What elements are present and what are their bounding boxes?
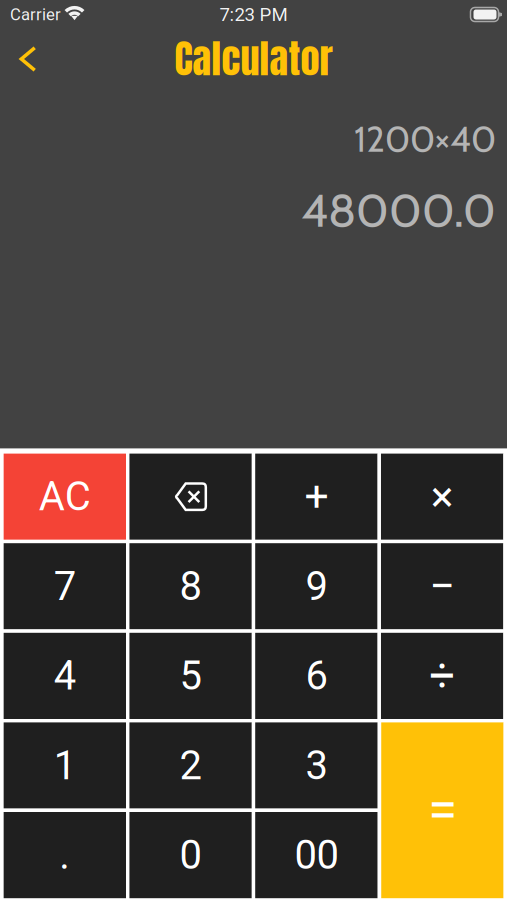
staticText: Calculator <box>174 30 332 88</box>
staticText: Carrier <box>10 5 61 24</box>
staticText: 0 <box>180 832 202 879</box>
button[interactable]: Equals <box>381 722 504 898</box>
staticText: 5 <box>180 652 202 699</box>
staticText: 7 <box>54 563 76 610</box>
staticText: 48000.0 <box>301 182 496 238</box>
button[interactable]: 8 <box>129 543 252 629</box>
staticText: ÷ <box>429 649 455 702</box>
staticText: = <box>428 779 457 842</box>
staticText: 1 <box>54 742 76 789</box>
button[interactable]: Multiply <box>381 454 503 540</box>
staticText: 8 <box>180 563 202 610</box>
staticText: 4 <box>54 652 76 699</box>
button[interactable]: 3 <box>255 722 378 809</box>
staticText: × <box>431 472 454 522</box>
staticText: AC <box>39 473 91 520</box>
button[interactable]: Minus <box>381 543 503 629</box>
button[interactable]: 1 <box>4 722 126 809</box>
staticText: 7:23 PM <box>219 4 287 25</box>
button[interactable]: 5 <box>129 633 252 719</box>
staticText: 3 <box>305 742 327 789</box>
button[interactable]: 4 <box>4 633 126 719</box>
button[interactable]: 0 <box>129 812 252 898</box>
staticText: 00 <box>294 832 338 879</box>
button[interactable]: Decimal point <box>4 812 126 898</box>
staticText: . <box>59 832 70 879</box>
button[interactable]: Plus <box>255 454 378 540</box>
button[interactable]: 2 <box>129 722 252 809</box>
staticText: 2 <box>180 742 202 789</box>
staticText: + <box>304 472 328 522</box>
button[interactable]: 7 <box>4 543 126 629</box>
staticText: 6 <box>305 652 327 699</box>
button[interactable]: 9 <box>255 543 378 629</box>
button[interactable]: Divide <box>381 633 503 719</box>
button[interactable]: All clear <box>4 454 126 540</box>
button[interactable]: 00 <box>255 812 378 898</box>
button[interactable]: 6 <box>255 633 378 719</box>
staticText: 1200×40 <box>354 117 496 161</box>
staticText: − <box>429 560 455 613</box>
button[interactable]: Back <box>0 31 56 87</box>
button[interactable]: Delete <box>129 454 252 540</box>
staticText: 9 <box>305 563 327 610</box>
